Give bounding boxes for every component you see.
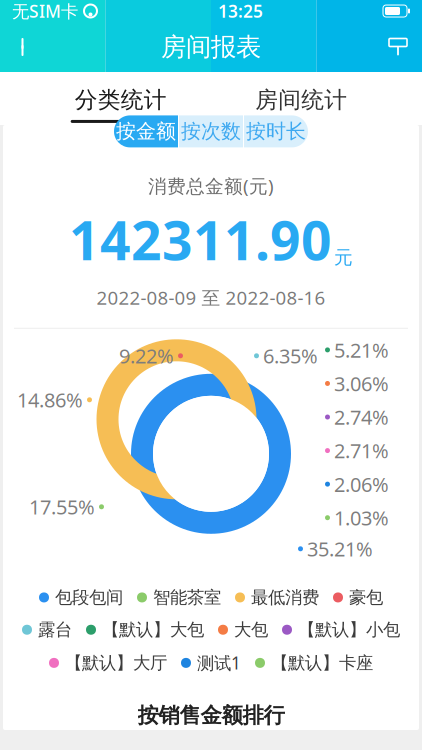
staticText: 露台 bbox=[38, 619, 72, 640]
staticText: 2.71% bbox=[334, 437, 389, 464]
staticText: 智能茶室 bbox=[153, 587, 221, 608]
staticText: 豪包 bbox=[349, 587, 383, 608]
staticText: 6.35% bbox=[263, 342, 318, 369]
staticText: 3.06% bbox=[334, 370, 389, 397]
staticText: 房间统计 bbox=[255, 86, 347, 114]
staticText: 【默认】大厅 bbox=[65, 652, 167, 673]
staticText: 按时长 bbox=[246, 119, 306, 144]
button[interactable]: 筛选 bbox=[374, 22, 422, 72]
staticText: 元 bbox=[334, 246, 353, 269]
button[interactable]: 房间统计 bbox=[241, 74, 361, 123]
staticText: 房间报表 bbox=[161, 31, 261, 62]
staticText: 14.86% bbox=[17, 386, 83, 413]
staticText: 2.74% bbox=[334, 404, 389, 430]
button[interactable]: 分类统计 bbox=[61, 74, 181, 123]
button[interactable]: 按次数 bbox=[179, 115, 243, 147]
button[interactable]: 返回 bbox=[0, 22, 48, 72]
staticText: 【默认】小包 bbox=[298, 619, 400, 640]
staticText: 按次数 bbox=[181, 119, 241, 144]
staticText: 2022-08-09 至 2022-08-16 bbox=[96, 285, 325, 310]
staticText: 5.21% bbox=[334, 337, 389, 363]
staticText: 大包 bbox=[234, 619, 268, 640]
staticText: 9.22% bbox=[119, 342, 174, 369]
staticText: 按金额 bbox=[116, 119, 176, 144]
staticText: 测试1 bbox=[197, 651, 241, 674]
staticText: 消费总金额(元) bbox=[148, 173, 274, 198]
staticText: 无SIM卡 bbox=[12, 0, 78, 22]
staticText: 包段包间 bbox=[55, 587, 123, 608]
staticText: 1.03% bbox=[334, 504, 389, 531]
staticText: 2.06% bbox=[334, 471, 389, 497]
button[interactable]: 按金额 bbox=[114, 115, 178, 147]
staticText: 35.21% bbox=[307, 535, 373, 562]
staticText: 17.55% bbox=[29, 493, 95, 520]
staticText: 分类统计 bbox=[75, 86, 167, 114]
staticText: 按销售金额排行 bbox=[137, 702, 284, 729]
staticText: 【默认】大包 bbox=[102, 619, 204, 640]
staticText: 最低消费 bbox=[251, 587, 319, 608]
staticText: 【默认】卡座 bbox=[271, 652, 373, 673]
staticText: 13:25 bbox=[218, 0, 263, 22]
staticText: 142311.90 bbox=[69, 204, 332, 275]
button[interactable]: 按时长 bbox=[244, 115, 308, 147]
